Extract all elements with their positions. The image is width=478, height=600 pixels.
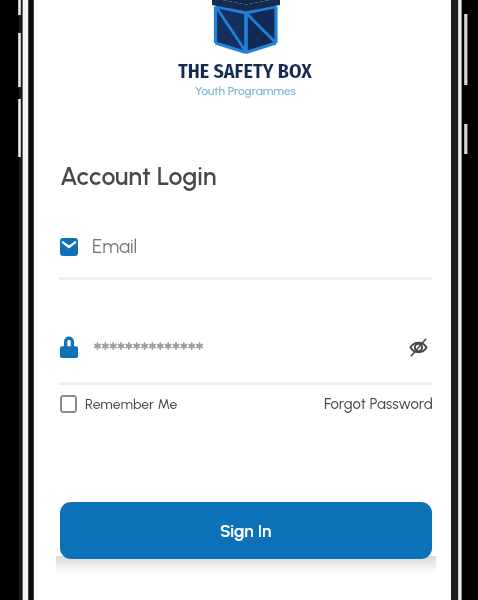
button[interactable]: Remember Me — [60, 392, 178, 416]
button[interactable] — [60, 334, 432, 358]
button[interactable]: Sign In — [60, 502, 432, 559]
staticText: Email — [92, 235, 138, 258]
staticText: Remember Me — [85, 396, 178, 413]
staticText: Sign In — [220, 521, 272, 541]
button[interactable]: Forgot Password — [324, 392, 433, 416]
staticText: Forgot Password — [324, 395, 433, 413]
button[interactable]: Show password — [404, 333, 432, 361]
staticText: THE SAFETY BOX — [178, 59, 312, 83]
staticText: Youth Programmes — [195, 84, 296, 98]
staticText: Account Login — [60, 161, 217, 191]
button[interactable]: Email — [60, 232, 432, 260]
